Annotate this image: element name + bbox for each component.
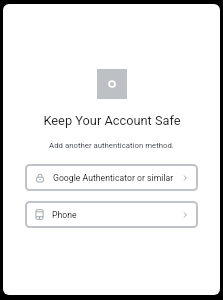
other: Authenticator app	[34, 172, 46, 184]
other: Open	[181, 174, 189, 182]
button[interactable]: Authenticator app	[25, 164, 198, 191]
staticText: Keep Your Account Safe	[43, 113, 181, 128]
staticText: Add another authentication method.	[49, 141, 174, 150]
staticText: Google Authenticator or similar	[53, 173, 181, 183]
other: Phone	[34, 209, 45, 220]
staticText: Phone	[52, 210, 181, 220]
button[interactable]: Phone	[25, 201, 198, 228]
other: Open	[181, 211, 189, 219]
